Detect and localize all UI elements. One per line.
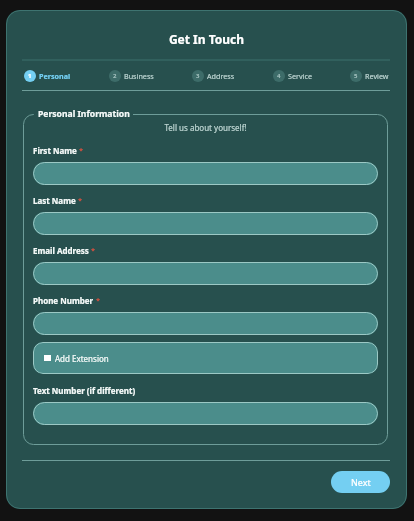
button[interactable]: 2 xyxy=(109,61,154,90)
staticText: 3 xyxy=(196,72,200,80)
staticText: Email Address xyxy=(33,245,89,256)
button[interactable]: First Name xyxy=(33,162,378,185)
staticText: Text Number (if different) xyxy=(33,385,136,396)
staticText: * xyxy=(91,245,96,255)
staticText: Business xyxy=(124,71,154,81)
staticText: Next xyxy=(351,476,371,488)
staticText: 4 xyxy=(277,72,281,80)
staticText: Address xyxy=(207,71,235,81)
staticText: Get In Touch xyxy=(6,31,407,47)
staticText: * xyxy=(78,195,83,205)
button[interactable]: Email Address xyxy=(33,262,378,285)
button[interactable]: Last Name xyxy=(33,212,378,235)
staticText: 5 xyxy=(354,72,358,80)
button[interactable]: 5 xyxy=(350,61,389,90)
staticText: Add Extension xyxy=(55,353,109,364)
button[interactable]: 3 xyxy=(192,61,235,90)
button[interactable]: Next xyxy=(331,471,390,493)
staticText: Review xyxy=(365,71,389,81)
button[interactable]: 4 xyxy=(273,61,312,90)
staticText: Tell us about yourself! xyxy=(33,122,378,133)
staticText: * xyxy=(96,295,101,305)
button[interactable]: Phone Number xyxy=(33,312,378,335)
staticText: Phone Number xyxy=(33,295,94,306)
staticText: 1 xyxy=(28,72,32,80)
staticText: Personal Information xyxy=(38,108,130,120)
button[interactable]: 1 xyxy=(24,61,71,90)
button[interactable]: Add Extension xyxy=(33,342,378,374)
staticText: Personal xyxy=(39,71,71,81)
staticText: Service xyxy=(288,71,312,81)
staticText: 2 xyxy=(113,72,117,80)
staticText: First Name xyxy=(33,145,77,156)
staticText: Last Name xyxy=(33,195,76,206)
button[interactable]: Text Number (if different) xyxy=(33,402,378,425)
staticText: * xyxy=(79,145,84,155)
